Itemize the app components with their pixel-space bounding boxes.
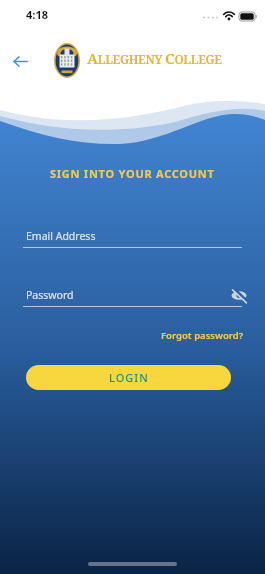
button[interactable]: LOGIN — [26, 365, 231, 390]
staticText: Forgot password? — [161, 329, 244, 342]
staticText: LOGIN — [109, 370, 149, 385]
staticText: 4:18 — [26, 7, 48, 22]
button[interactable]: Password — [23, 287, 242, 307]
staticText: ALLEGHENY COLLEGE — [87, 48, 222, 68]
staticText: SIGN INTO YOUR ACCOUNT — [50, 166, 215, 181]
button[interactable]: Email Address — [23, 228, 242, 248]
button[interactable]: Forgot password? — [161, 329, 244, 342]
staticText: Password — [26, 288, 74, 302]
staticText: Email Address — [26, 229, 96, 243]
button[interactable] — [8, 51, 36, 73]
